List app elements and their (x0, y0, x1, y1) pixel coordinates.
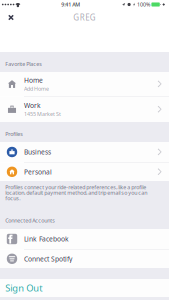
staticText: Business (24, 148, 51, 156)
staticText: Profiles connect your ride-related prefe… (5, 184, 147, 202)
staticText: 9:41 AM (61, 1, 80, 8)
button[interactable]: Personal (0, 163, 169, 181)
button[interactable]: Work (0, 97, 169, 122)
staticText: 1455 Market St (24, 110, 61, 118)
button[interactable]: Business (0, 142, 169, 162)
staticText: Personal (24, 167, 52, 176)
staticText: Connected Accounts (5, 217, 55, 224)
staticText: Connect Spotify (24, 254, 72, 263)
staticText: Home (24, 76, 43, 85)
staticText: Work (24, 101, 41, 110)
staticText: Profiles (5, 130, 23, 137)
staticText: Link Facebook (24, 235, 69, 243)
staticText: 100% (137, 1, 150, 8)
staticText: Add Home (24, 85, 49, 92)
button[interactable]: Sign Out (0, 279, 169, 297)
button[interactable]: Close (0, 9, 22, 26)
button[interactable]: Link Facebook (0, 229, 169, 249)
button[interactable]: Home (0, 72, 169, 96)
button[interactable]: Connect Spotify (0, 250, 169, 268)
staticText: GREG (73, 12, 96, 23)
staticText: Sign Out (5, 282, 42, 294)
staticText: Favorite Places (5, 60, 42, 67)
